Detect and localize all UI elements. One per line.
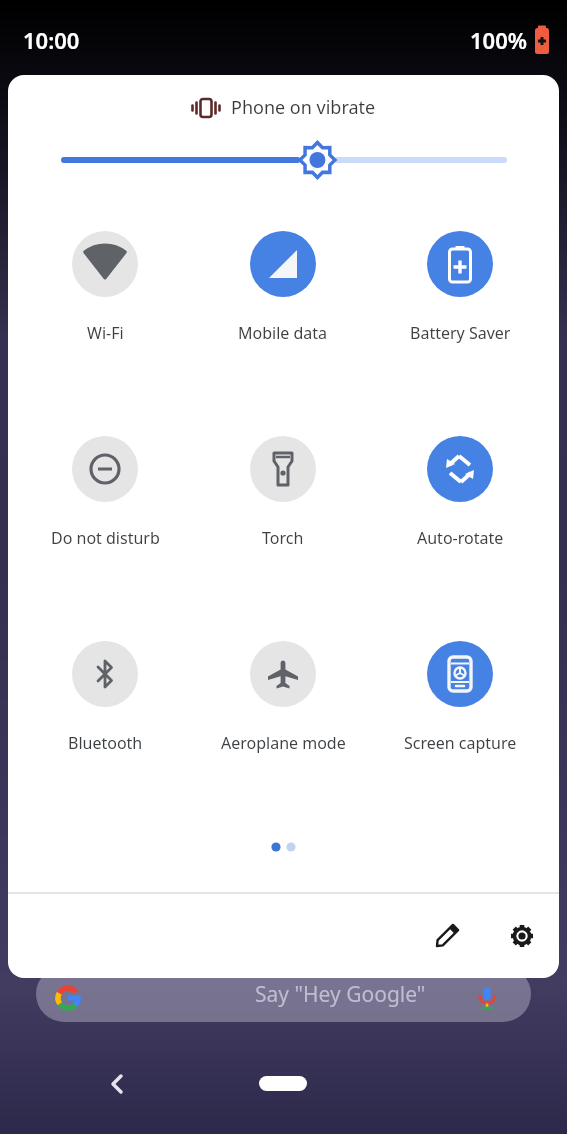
staticText: Bluetooth — [68, 732, 143, 754]
staticText: Aeroplane mode — [221, 732, 346, 754]
staticText: Auto-rotate — [417, 527, 504, 549]
staticText: Screen capture — [404, 732, 517, 754]
button[interactable]: Phone on vibrate — [191, 95, 376, 120]
staticText: Phone on vibrate — [231, 95, 376, 120]
button[interactable]: Aeroplane mode — [208, 641, 358, 754]
button[interactable] — [64, 137, 504, 183]
button[interactable]: Mobile data — [208, 231, 358, 344]
staticText: Torch — [262, 527, 304, 549]
staticText: 100% — [470, 25, 528, 55]
staticText: 10:00 — [23, 25, 80, 55]
button[interactable] — [103, 1070, 131, 1098]
staticText: Do not disturb — [51, 527, 160, 549]
staticText: Say "Hey Google" — [255, 980, 426, 1009]
button[interactable] — [259, 1076, 307, 1091]
button[interactable]: Battery Saver — [385, 231, 535, 344]
staticText: Mobile data — [238, 322, 328, 344]
button[interactable]: Auto-rotate — [385, 436, 535, 549]
button[interactable]: Say "Hey Google" — [36, 966, 531, 1022]
button[interactable] — [508, 922, 536, 950]
button[interactable]: Torch — [208, 436, 358, 549]
staticText: Wi-Fi — [87, 322, 124, 344]
button[interactable]: Wi-Fi — [30, 231, 180, 344]
button[interactable] — [433, 922, 461, 950]
button[interactable]: Screen capture — [385, 641, 535, 754]
button[interactable]: Bluetooth — [30, 641, 180, 754]
staticText: Battery Saver — [410, 322, 511, 344]
button[interactable]: Do not disturb — [30, 436, 180, 549]
